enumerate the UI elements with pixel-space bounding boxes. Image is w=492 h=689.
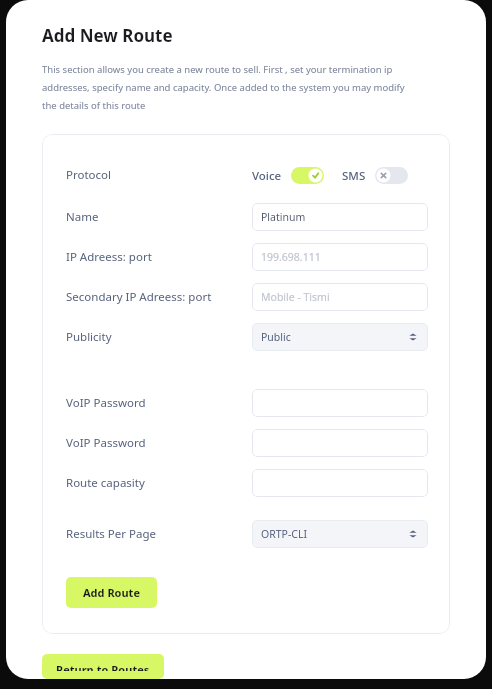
staticText: Platinum xyxy=(261,210,306,224)
staticText: Voice xyxy=(252,168,282,184)
button[interactable]: Public xyxy=(252,323,428,351)
staticText: Protocol xyxy=(66,167,111,183)
button[interactable]: Return to Routes xyxy=(42,654,164,679)
button[interactable]: Platinum xyxy=(252,203,428,231)
button[interactable] xyxy=(252,389,428,417)
other: Open dropdown xyxy=(407,528,419,540)
staticText: 199.698.111 xyxy=(261,250,321,264)
staticText: Name xyxy=(66,209,99,225)
button[interactable]: Mobile - Tismi xyxy=(252,283,428,311)
staticText: Add New Route xyxy=(42,24,173,47)
staticText: This section allows you create a new rou… xyxy=(42,63,393,76)
other: Open dropdown xyxy=(407,331,419,343)
staticText: Publicity xyxy=(66,329,112,345)
staticText: the details of this route xyxy=(42,99,146,112)
staticText: Mobile - Tismi xyxy=(261,290,330,304)
staticText: IP Adreess: port xyxy=(66,249,152,265)
staticText: addresses, specify name and capacity. On… xyxy=(42,81,405,94)
staticText: Results Per Page xyxy=(66,526,157,542)
staticText: VoIP Password xyxy=(66,395,146,411)
button[interactable] xyxy=(252,469,428,497)
button[interactable] xyxy=(252,429,428,457)
staticText: VoIP Password xyxy=(66,435,146,451)
button[interactable]: Add Route xyxy=(66,577,157,608)
staticText: SMS xyxy=(342,168,366,184)
staticText: Route capasity xyxy=(66,475,145,491)
staticText: Public xyxy=(261,330,291,344)
staticText: ORTP-CLI xyxy=(261,527,308,541)
button[interactable]: Voice protocol toggle xyxy=(291,167,324,184)
staticText: Return to Routes xyxy=(56,662,150,671)
button[interactable]: SMS protocol toggle xyxy=(375,167,408,184)
staticText: Secondary IP Adreess: port xyxy=(66,289,212,305)
button[interactable]: ORTP-CLI xyxy=(252,520,428,548)
staticText: Add Route xyxy=(83,585,140,600)
button[interactable]: 199.698.111 xyxy=(252,243,428,271)
